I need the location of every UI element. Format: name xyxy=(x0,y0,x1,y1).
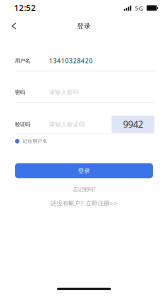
button[interactable]: 还没有帐户? 立即注册>> xyxy=(50,197,117,209)
staticText: 12:52 xyxy=(14,3,36,13)
staticText: 记住用户名 xyxy=(22,138,47,144)
staticText: 验证码 xyxy=(15,121,30,128)
button[interactable]: Refresh captcha xyxy=(111,116,154,133)
staticText: 登录 xyxy=(78,167,90,174)
button[interactable]: Back xyxy=(2,17,26,35)
staticText: 用户名 xyxy=(15,57,30,64)
button[interactable]: 记住用户名 xyxy=(0,134,168,148)
staticText: 请输入验证码 xyxy=(49,121,85,128)
staticText: 还没有帐户? 立即注册>> xyxy=(50,199,117,207)
staticText: 密码 xyxy=(15,89,25,95)
button[interactable]: 登录 xyxy=(15,163,153,178)
staticText: 9942 xyxy=(123,118,143,131)
staticText: 登录 xyxy=(77,22,91,30)
staticText: 13410328420 xyxy=(49,56,93,65)
button[interactable]: 忘记密码? xyxy=(73,182,95,196)
staticText: 5G xyxy=(135,4,143,12)
staticText: 忘记密码? xyxy=(73,186,95,193)
staticText: 请输入密码 xyxy=(49,89,79,96)
